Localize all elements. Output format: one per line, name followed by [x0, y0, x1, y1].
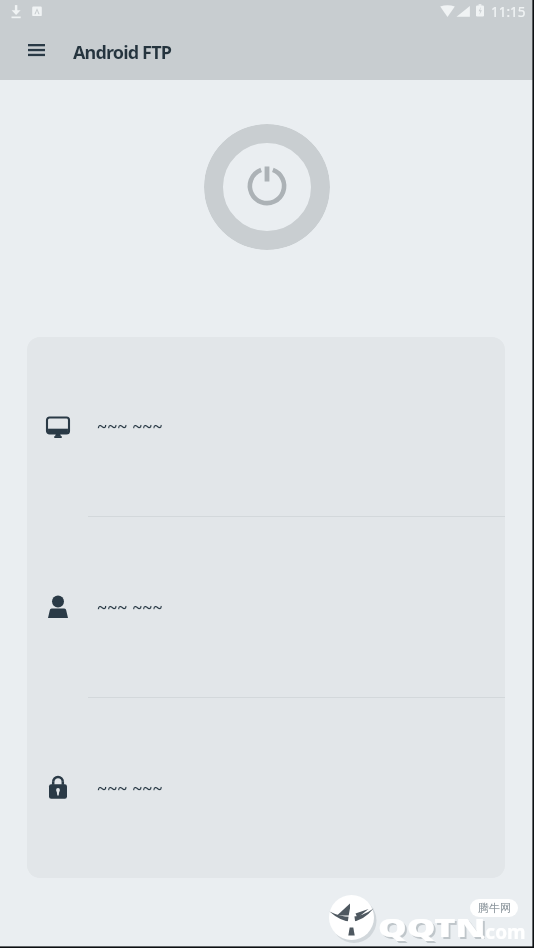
staticText: QQTN: [380, 913, 488, 946]
staticText: Android FTP: [73, 40, 172, 65]
button[interactable]: ~~~ ~~~: [27, 517, 505, 697]
button[interactable]: ~~~ ~~~: [27, 698, 505, 878]
button[interactable]: ~~~ ~~~: [27, 337, 505, 516]
button[interactable]: Open navigation drawer: [16, 30, 56, 70]
staticText: .com: [480, 919, 526, 945]
staticText: ~~~ ~~~: [97, 595, 163, 620]
staticText: ~~~ ~~~: [97, 414, 163, 439]
button[interactable]: Toggle FTP server: [204, 124, 330, 250]
staticText: ~~~ ~~~: [97, 776, 163, 801]
staticText: QQTN: [378, 911, 486, 944]
staticText: 腾牛网: [478, 901, 511, 915]
staticText: 11:15: [491, 3, 526, 21]
